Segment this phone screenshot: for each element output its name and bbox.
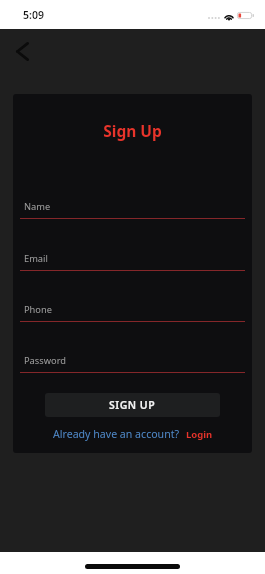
button[interactable]: Login [186, 428, 213, 441]
button[interactable]: Password [20, 351, 245, 373]
staticText: Password [24, 354, 67, 367]
staticText: Login [186, 428, 213, 441]
button[interactable]: Phone [20, 300, 245, 322]
staticText: 5:09 [23, 8, 44, 22]
button[interactable]: Back [4, 33, 40, 69]
staticText: Email [24, 252, 48, 265]
button[interactable]: SIGN UP [45, 393, 220, 417]
staticText: Sign Up [13, 120, 252, 141]
staticText: SIGN UP [109, 398, 156, 412]
button[interactable]: Email [20, 249, 245, 271]
staticText: Name [24, 200, 51, 213]
button[interactable]: Name [20, 197, 245, 219]
staticText: Phone [24, 303, 52, 316]
staticText: Already have an account? [53, 427, 180, 441]
